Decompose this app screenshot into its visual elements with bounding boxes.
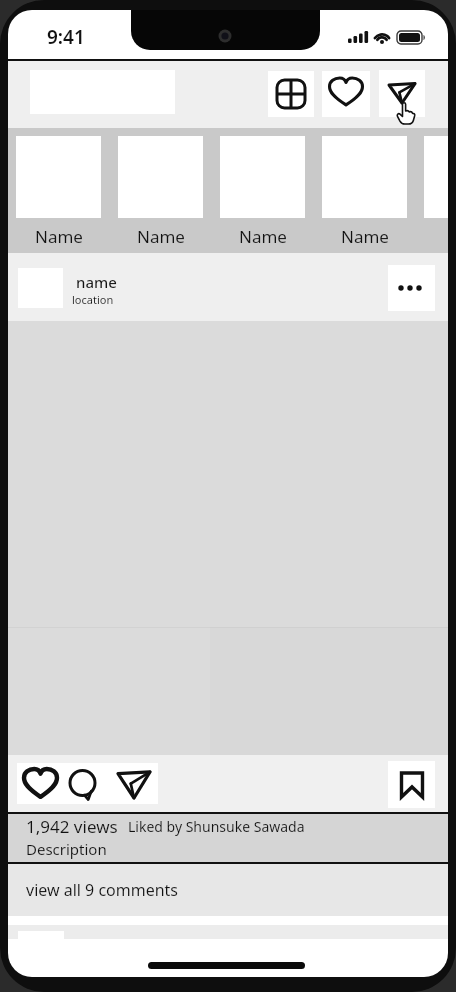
button[interactable] [111,763,158,804]
button[interactable] [268,71,314,117]
staticText: Description [26,839,107,859]
button[interactable] [388,761,435,808]
staticText: Name [239,225,287,247]
button[interactable] [322,71,370,117]
staticText: Name [341,225,389,247]
button[interactable] [388,265,435,311]
staticText: Liked by Shunsuke Sawada [128,817,305,836]
button[interactable]: view all 9 comments [8,864,448,916]
staticText: location [72,292,114,307]
staticText: Name [137,225,185,247]
button[interactable] [17,763,64,804]
button[interactable]: name [72,272,114,307]
button[interactable] [64,763,111,804]
staticText: Name [35,225,83,247]
staticText: name [76,272,117,292]
staticText: 9:41 [47,24,85,48]
staticText: view all 9 comments [26,879,179,901]
staticText: 1,942 views [26,815,118,838]
button[interactable] [379,70,425,117]
